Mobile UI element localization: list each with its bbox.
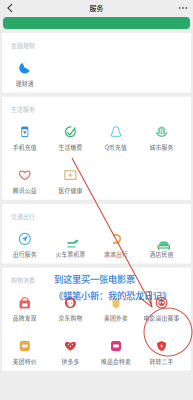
- button[interactable]: 酒店民宿: [139, 220, 184, 264]
- staticText: 购物消费: [11, 276, 35, 284]
- button[interactable]: 美团特价: [2, 327, 48, 371]
- staticText: 腾讯公益: [13, 186, 37, 194]
- button[interactable]: 拼多多: [48, 327, 93, 371]
- staticText: 生活服务: [11, 105, 35, 113]
- staticText: 电影演出赛事: [144, 314, 180, 322]
- button[interactable]: 美团外卖: [93, 284, 139, 327]
- button[interactable]: 城市服务: [139, 113, 184, 157]
- button[interactable]: 腾讯公益: [2, 157, 48, 200]
- button[interactable]: 手机充值: [2, 113, 48, 157]
- staticText: 品牌发现: [13, 314, 37, 322]
- button[interactable]: 火车票机票: [48, 220, 93, 264]
- staticText: 酒店民宿: [150, 250, 174, 258]
- staticText: 金融理财: [11, 41, 35, 49]
- button[interactable]: 京东购物: [48, 284, 93, 327]
- button[interactable]: 电影演出赛事: [139, 284, 184, 327]
- staticText: 美团外卖: [104, 314, 128, 322]
- staticText: 火车票机票: [55, 250, 85, 258]
- button[interactable]: 唯品会特卖: [93, 327, 139, 371]
- staticText: 转转二手: [150, 357, 174, 365]
- staticText: 医疗健康: [58, 186, 82, 194]
- staticText: 城市服务: [150, 143, 174, 151]
- staticText: 到这里买一张电影票: [54, 272, 135, 285]
- button[interactable]: 品牌发现: [2, 284, 48, 327]
- button[interactable]: 出行服务: [2, 220, 48, 264]
- staticText: 手机充值: [13, 143, 37, 151]
- button[interactable]: 理财通: [2, 49, 48, 93]
- button[interactable]: More: [174, 0, 192, 16]
- staticText: 交通出行: [11, 212, 35, 220]
- staticText: Q币充值: [105, 143, 127, 151]
- staticText: 《蜡笔小新：我的恐龙日记》: [54, 288, 171, 302]
- staticText: 生活缴费: [58, 143, 82, 151]
- button[interactable]: 生活缴费: [48, 113, 93, 157]
- staticText: 滴滴出行: [104, 250, 128, 258]
- staticText: 服务: [89, 3, 103, 13]
- staticText: 美团特价: [13, 357, 37, 365]
- button[interactable]: 医疗健康: [48, 157, 93, 200]
- staticText: 唯品会特卖: [101, 357, 131, 365]
- staticText: 理财通: [16, 79, 34, 87]
- button[interactable]: Back: [2, 0, 18, 16]
- button[interactable]: Q币充值: [93, 113, 139, 157]
- staticText: 出行服务: [13, 250, 37, 258]
- staticText: 京东购物: [58, 314, 82, 322]
- button[interactable]: 转转二手: [139, 327, 184, 371]
- staticText: 拼多多: [61, 357, 79, 365]
- button[interactable]: 滴滴出行: [93, 220, 139, 264]
